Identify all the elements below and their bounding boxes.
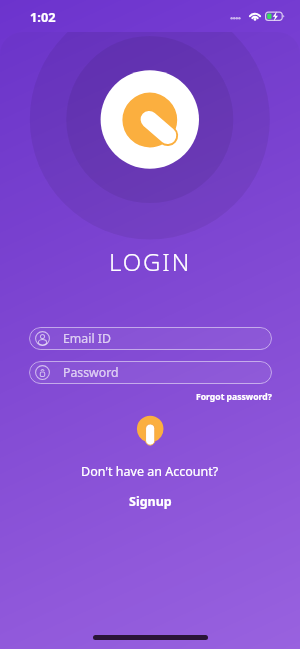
button[interactable]: Log in (133, 412, 167, 446)
staticText: Email ID (63, 330, 111, 347)
button[interactable]: Password (29, 361, 272, 384)
staticText: Don't have an Account? (81, 463, 219, 480)
staticText: 1:02 (30, 8, 56, 25)
button[interactable]: Email ID (29, 327, 272, 350)
button[interactable]: Forgot password? (196, 391, 272, 403)
button[interactable]: Signup (129, 493, 172, 510)
staticText: Password (63, 364, 119, 381)
staticText: LOGIN (109, 245, 192, 278)
